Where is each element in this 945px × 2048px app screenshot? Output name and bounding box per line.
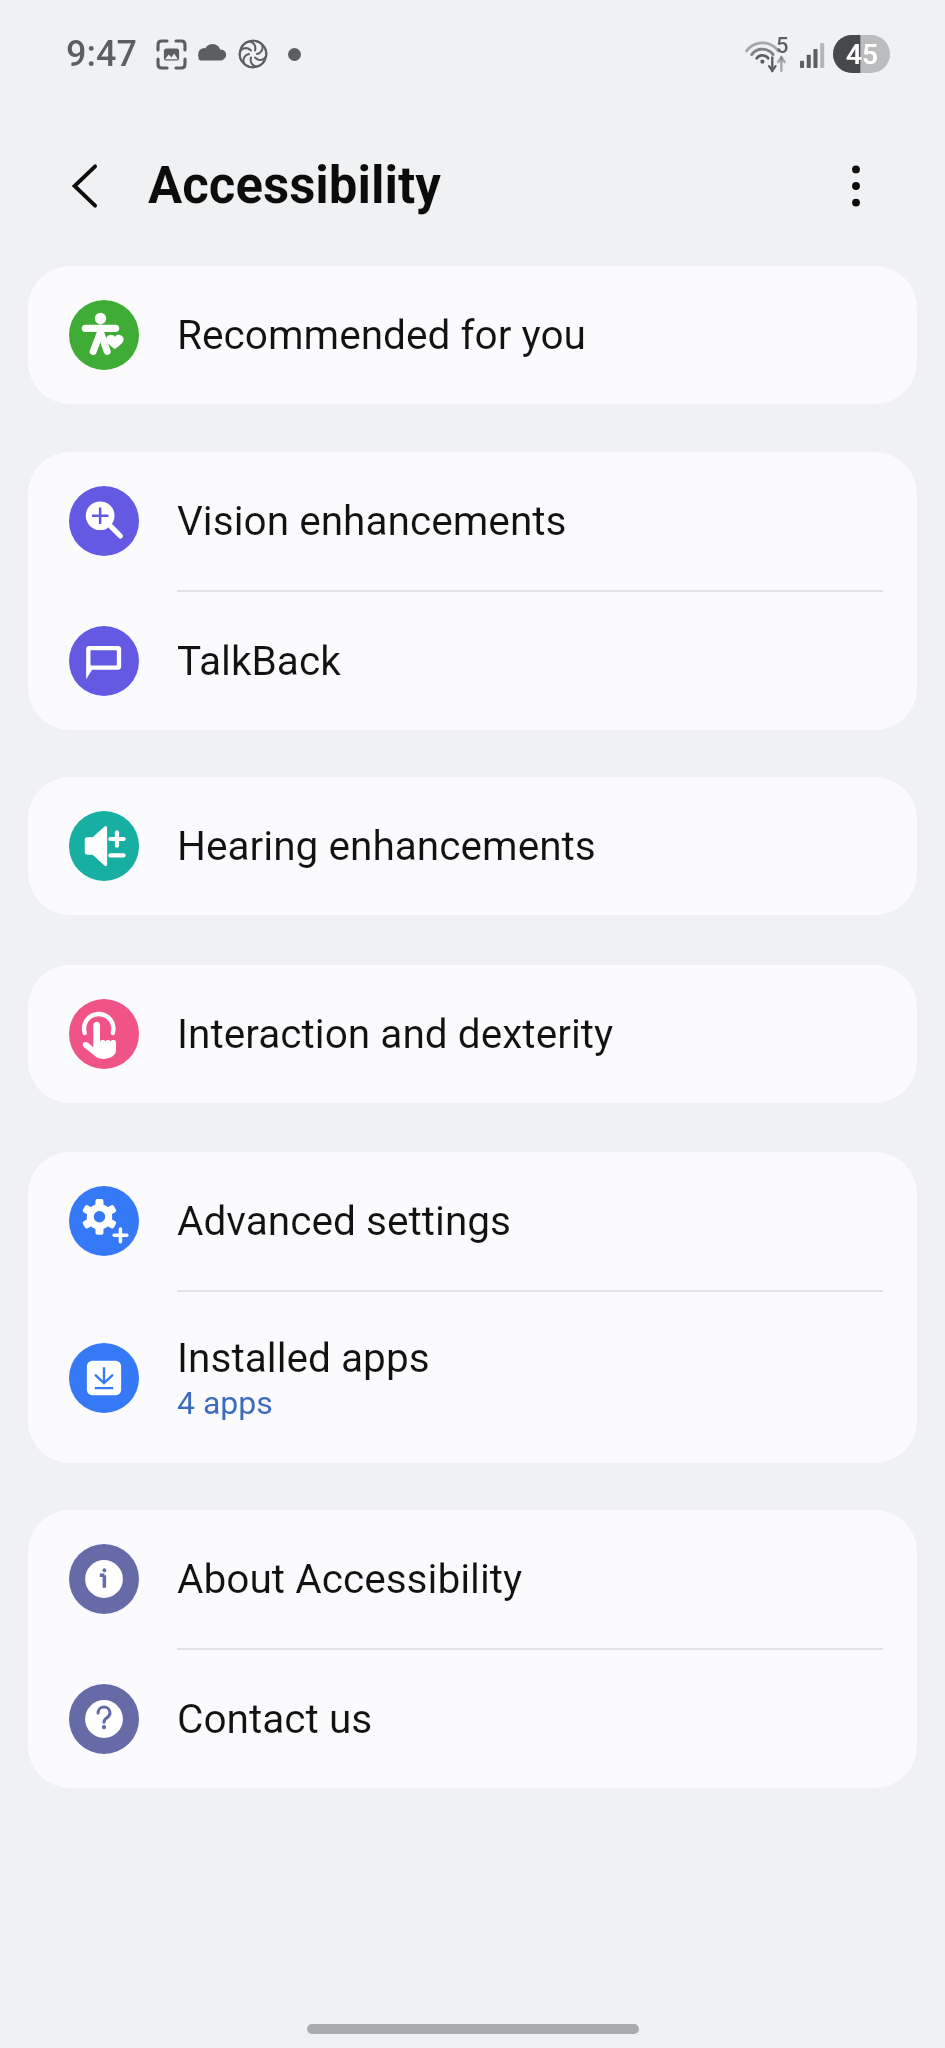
- staticText: Recommended for you: [177, 311, 586, 359]
- staticText: 4 apps: [177, 1384, 273, 1422]
- staticText: 45: [846, 38, 878, 71]
- staticText: Hearing enhancements: [177, 822, 596, 870]
- staticText: Advanced settings: [177, 1197, 512, 1245]
- button[interactable]: Recommended for you: [28, 266, 917, 404]
- button[interactable]: Interaction and dexterity: [28, 965, 917, 1103]
- staticText: Interaction and dexterity: [177, 1010, 614, 1058]
- button[interactable]: Hearing enhancements: [28, 777, 917, 915]
- staticText: Vision enhancements: [177, 497, 567, 545]
- staticText: Installed apps: [177, 1334, 430, 1382]
- button[interactable]: Contact us: [28, 1650, 917, 1788]
- button[interactable]: Back: [42, 141, 132, 231]
- staticText: About Accessibility: [177, 1555, 523, 1603]
- button[interactable]: TalkBack: [28, 592, 917, 730]
- button[interactable]: Vision enhancements: [28, 452, 917, 590]
- staticText: 5: [776, 33, 789, 59]
- staticText: TalkBack: [177, 637, 341, 685]
- staticText: Contact us: [177, 1695, 373, 1743]
- button[interactable]: Advanced settings: [28, 1152, 917, 1290]
- button[interactable]: More options: [812, 142, 900, 230]
- staticText: Accessibility: [148, 156, 441, 216]
- staticText: 9:47: [66, 33, 137, 75]
- button[interactable]: About Accessibility: [28, 1510, 917, 1648]
- button[interactable]: Installed apps: [28, 1292, 917, 1463]
